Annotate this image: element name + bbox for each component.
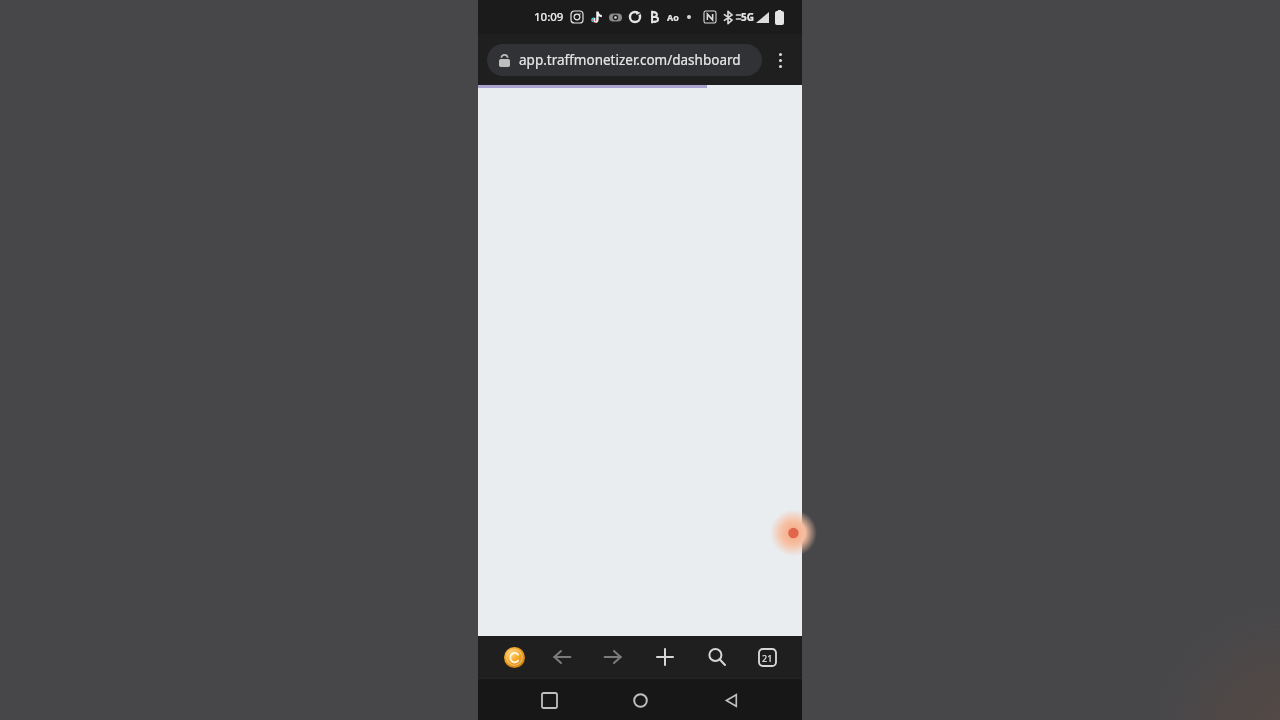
button[interactable]: app.traffmonetizer.com/dashboard: [487, 44, 762, 76]
staticText: app.traffmonetizer.com/dashboard: [519, 51, 741, 69]
button[interactable]: Recent apps: [529, 680, 569, 720]
button[interactable]: Home: [620, 680, 660, 720]
button[interactable]: Switch tabs, 21 open: [750, 640, 784, 674]
button[interactable]: Back: [543, 638, 581, 676]
button[interactable]: Back: [711, 680, 751, 720]
button[interactable]: More options: [762, 42, 798, 78]
staticText: 21: [762, 652, 773, 664]
button[interactable]: Forward: [594, 638, 632, 676]
staticText: Aol.: [666, 11, 680, 23]
button[interactable]: Search: [698, 638, 736, 676]
button[interactable]: Home: [498, 641, 530, 673]
staticText: 5G: [741, 10, 754, 24]
button[interactable]: New tab: [646, 638, 684, 676]
staticText: 10:09: [534, 9, 564, 25]
